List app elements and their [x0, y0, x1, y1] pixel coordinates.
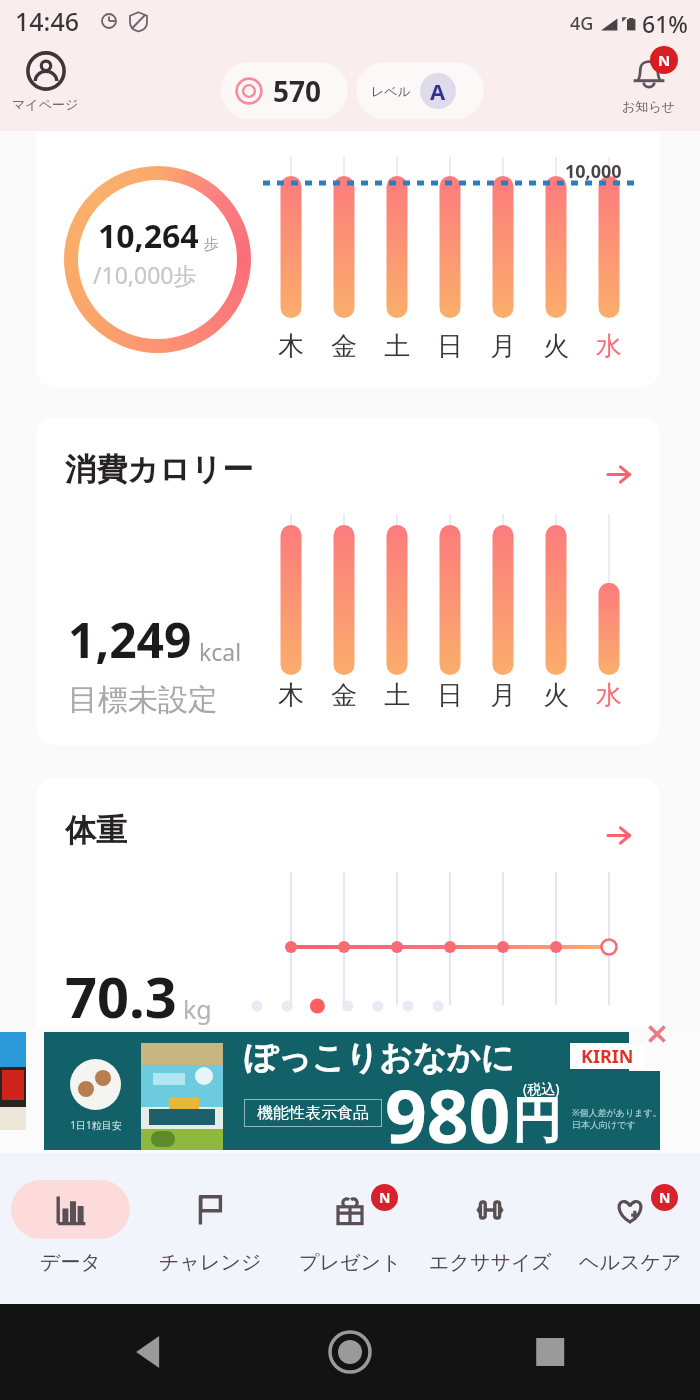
- staticText: マイページ: [12, 96, 79, 112]
- staticText: 機能性表示食品: [257, 1103, 369, 1123]
- staticText: 土: [381, 679, 413, 712]
- button[interactable]: 体重: [36, 778, 660, 1078]
- button[interactable]: 体重の詳細: [607, 823, 631, 847]
- staticText: 10,264: [98, 214, 199, 258]
- staticText: N: [659, 1188, 671, 1207]
- staticText: 61%: [642, 8, 688, 39]
- staticText: 目標未設定: [68, 681, 218, 719]
- staticText: 70.3: [65, 958, 177, 1034]
- staticText: N: [658, 50, 671, 70]
- button[interactable]: データ: [0, 1153, 140, 1304]
- button[interactable]: 消費カロリー: [36, 417, 660, 745]
- staticText: プレゼント: [299, 1250, 402, 1275]
- staticText: 1,249: [68, 607, 192, 672]
- button[interactable]: エクササイズ: [420, 1153, 560, 1304]
- button[interactable]: 570: [221, 62, 348, 119]
- staticText: 木: [275, 679, 307, 712]
- staticText: 火: [540, 330, 572, 363]
- staticText: 体重: [65, 811, 127, 850]
- staticText: 月: [487, 330, 519, 363]
- button[interactable]: お知らせ: [622, 51, 675, 114]
- staticText: (税込): [523, 1079, 560, 1098]
- button[interactable]: N: [560, 1153, 700, 1304]
- staticText: お知らせ: [622, 98, 675, 114]
- button[interactable]: マイページ: [12, 51, 79, 112]
- button[interactable]: 10,264: [36, 131, 660, 388]
- staticText: 10,000: [565, 159, 622, 184]
- staticText: 日: [434, 679, 466, 712]
- staticText: ヘルスケア: [579, 1250, 682, 1275]
- staticText: 980: [385, 1065, 511, 1164]
- staticText: 1日1粒目安: [62, 1118, 130, 1132]
- button[interactable]: レベル: [356, 62, 484, 119]
- staticText: 570: [273, 72, 322, 110]
- staticText: 金: [328, 330, 360, 363]
- button[interactable]: チャレンジ: [140, 1153, 280, 1304]
- staticText: 土: [381, 330, 413, 363]
- staticText: A: [430, 76, 446, 106]
- staticText: レベル: [371, 83, 411, 99]
- staticText: 火: [540, 679, 572, 712]
- staticText: チャレンジ: [159, 1250, 262, 1275]
- staticText: 4G: [570, 11, 594, 36]
- staticText: ※個人差があります。 日本人向けです: [572, 1106, 662, 1131]
- button[interactable]: 消費カロリーの詳細: [607, 462, 631, 486]
- button[interactable]: 閉じる: [647, 1024, 667, 1044]
- staticText: 月: [487, 679, 519, 712]
- staticText: 水: [593, 679, 625, 712]
- staticText: 金: [328, 679, 360, 712]
- staticText: 木: [275, 330, 307, 363]
- staticText: 水: [593, 330, 625, 363]
- button[interactable]: N: [280, 1153, 420, 1304]
- button[interactable]: 1日1粒目安: [44, 1032, 660, 1150]
- staticText: kg: [183, 992, 212, 1026]
- staticText: 円: [512, 1090, 561, 1152]
- staticText: 日: [434, 330, 466, 363]
- staticText: /10,000歩: [93, 259, 197, 290]
- staticText: N: [379, 1188, 391, 1207]
- staticText: エクササイズ: [429, 1250, 552, 1275]
- staticText: 歩: [204, 235, 219, 254]
- staticText: ぽっこりおなかに: [244, 1037, 515, 1079]
- staticText: 14:46: [15, 4, 80, 38]
- staticText: データ: [40, 1250, 101, 1275]
- staticText: KIRIN: [581, 1044, 634, 1069]
- staticText: 消費カロリー: [65, 450, 254, 489]
- staticText: kcal: [199, 636, 242, 667]
